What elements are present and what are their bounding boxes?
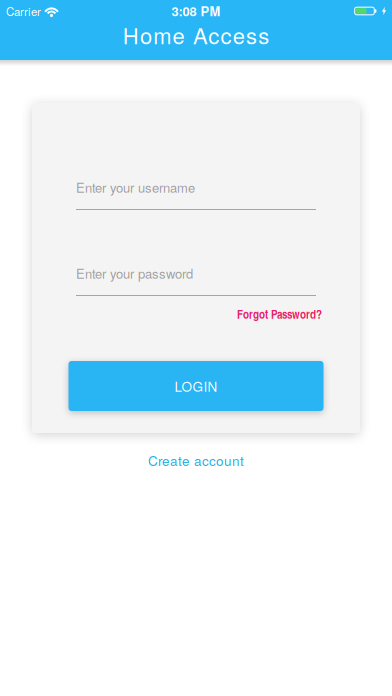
button[interactable]: LOGIN (68, 361, 323, 411)
button[interactable]: Create account (148, 450, 244, 470)
staticText: Enter your username (76, 178, 195, 196)
staticText: Carrier (6, 3, 41, 19)
staticText: 3:08 PM (171, 2, 220, 20)
staticText: Forgot Password? (237, 305, 322, 322)
staticText: Enter your password (76, 264, 193, 282)
staticText: LOGIN (174, 376, 217, 396)
button[interactable]: Forgot Password? (237, 307, 322, 321)
staticText: Create account (148, 450, 244, 470)
staticText: Home Access (123, 19, 269, 50)
